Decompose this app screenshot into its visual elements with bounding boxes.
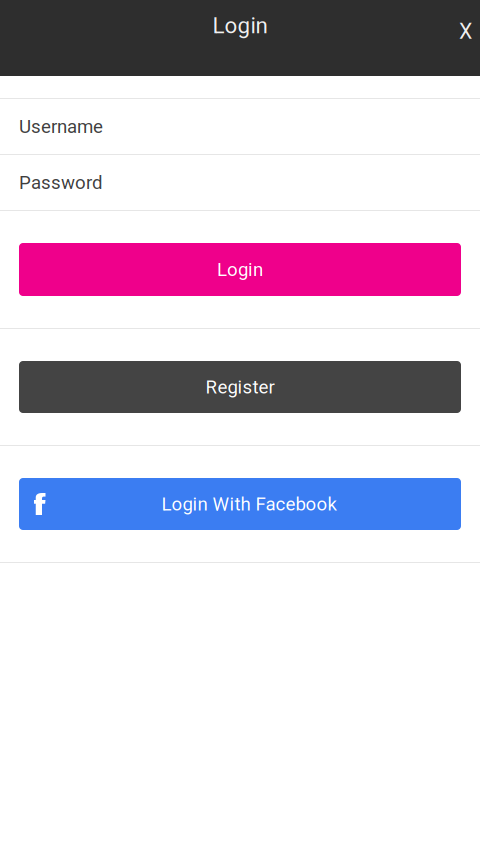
staticText: Username [19,116,103,137]
button[interactable]: Password [0,155,480,210]
staticText: Register [205,376,274,398]
button[interactable]: Login With Facebook [19,478,461,530]
staticText: X [459,19,472,44]
staticText: Password [19,172,103,193]
staticText: Login [217,259,263,280]
button[interactable]: Login [19,243,461,296]
staticText: Login [212,13,267,39]
button[interactable]: Username [0,99,480,154]
button[interactable]: Close [451,9,480,53]
staticText: Login With Facebook [161,493,336,515]
button[interactable]: Register [19,361,461,413]
